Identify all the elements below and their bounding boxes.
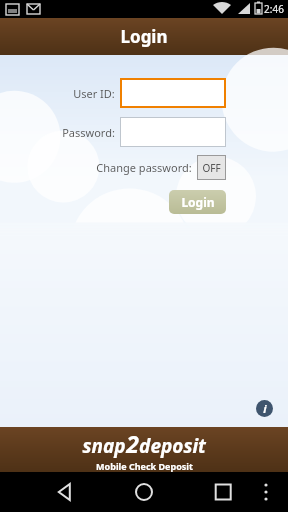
staticText: User ID: [73, 86, 115, 101]
button[interactable]: Information [256, 400, 273, 417]
staticText: i [263, 401, 267, 416]
staticText: Login [181, 194, 215, 210]
staticText: Password: [62, 125, 115, 140]
staticText: Mobile Check Deposit [96, 460, 193, 472]
button[interactable] [120, 117, 226, 147]
staticText: 2 [126, 428, 139, 459]
staticText: 2:46 [264, 2, 284, 16]
button[interactable] [120, 78, 226, 108]
staticText: Change password: [96, 160, 192, 175]
staticText: Login [120, 25, 168, 48]
button[interactable]: OFF [197, 155, 226, 180]
staticText: OFF [202, 161, 221, 175]
staticText: snap [82, 433, 126, 459]
button[interactable]: Login [169, 190, 226, 214]
staticText: deposit [139, 433, 206, 459]
